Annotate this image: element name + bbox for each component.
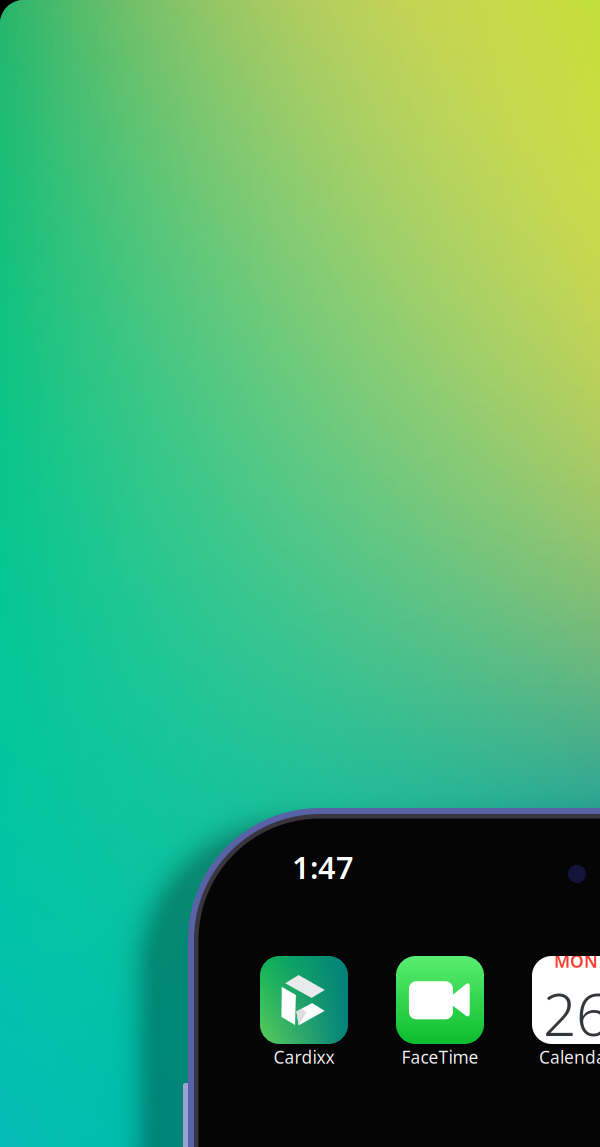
staticText: MON: [554, 949, 598, 972]
button[interactable]: MON: [520, 956, 600, 1066]
button[interactable]: Cardixx: [248, 956, 360, 1066]
staticText: Cardixx: [273, 1045, 334, 1068]
button[interactable]: FaceTime: [384, 956, 496, 1066]
staticText: 1:47: [292, 847, 354, 887]
staticText: FaceTime: [401, 1045, 478, 1068]
staticText: Calendar: [539, 1045, 600, 1068]
staticText: 26: [543, 974, 600, 1052]
